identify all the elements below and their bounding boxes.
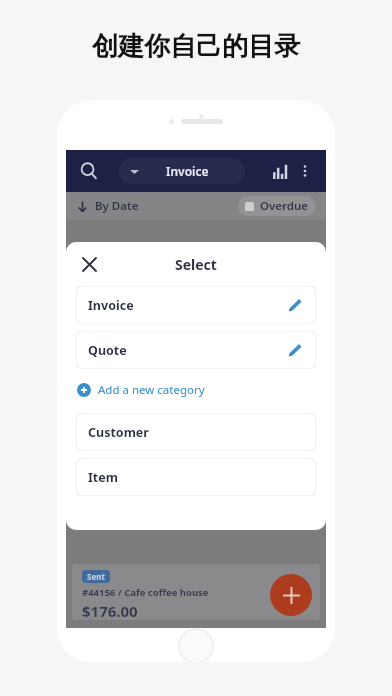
button[interactable]: Item	[76, 458, 316, 496]
staticText: Item	[88, 469, 118, 486]
staticText: Select	[175, 255, 217, 274]
button[interactable]: Create new	[270, 574, 312, 616]
button[interactable]: Add a new category	[77, 382, 205, 398]
button[interactable]: Edit Invoice	[282, 292, 308, 318]
staticText: Invoice	[88, 297, 134, 314]
staticText: Overdue	[260, 198, 309, 214]
button[interactable]: Edit Quote	[282, 337, 308, 363]
staticText: Quote	[88, 342, 127, 359]
button[interactable]: Search	[75, 157, 103, 185]
button[interactable]: Invoice	[119, 158, 245, 184]
staticText: Add a new category	[98, 382, 205, 398]
button[interactable]: Customer	[76, 413, 316, 451]
button[interactable]: Quote	[76, 331, 316, 369]
staticText: $176.00	[82, 601, 138, 620]
staticText: By Date	[95, 198, 139, 214]
staticText: 5 Sep	[282, 582, 306, 594]
button[interactable]: By Date	[76, 198, 139, 214]
staticText: Invoice	[166, 163, 209, 179]
button[interactable]: Sent	[72, 564, 320, 620]
staticText: 创建你自己的目录	[92, 30, 300, 63]
button[interactable]: Close	[74, 249, 104, 279]
staticText: Customer	[88, 424, 149, 441]
button[interactable]: Reports	[267, 158, 293, 184]
button[interactable]: Invoice	[76, 286, 316, 324]
button[interactable]: Overdue	[238, 196, 316, 216]
staticText: Sent	[87, 571, 105, 582]
button[interactable]: More options	[293, 159, 317, 183]
staticText: #44156 / Cafe coffee house	[82, 586, 209, 599]
